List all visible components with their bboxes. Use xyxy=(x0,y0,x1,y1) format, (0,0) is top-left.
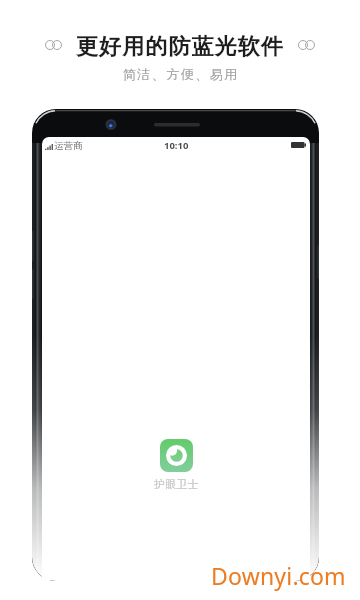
staticText: 简洁、方便、易用 xyxy=(122,66,238,82)
button[interactable]: Downyi.com xyxy=(211,560,346,591)
staticText: 护眼卫士 xyxy=(154,477,199,491)
staticText: 更好用的防蓝光软件 xyxy=(76,33,284,61)
staticText: 10:10 xyxy=(164,139,189,152)
staticText: 运营商 xyxy=(54,140,83,152)
button[interactable]: 护眼卫士 xyxy=(160,439,193,472)
